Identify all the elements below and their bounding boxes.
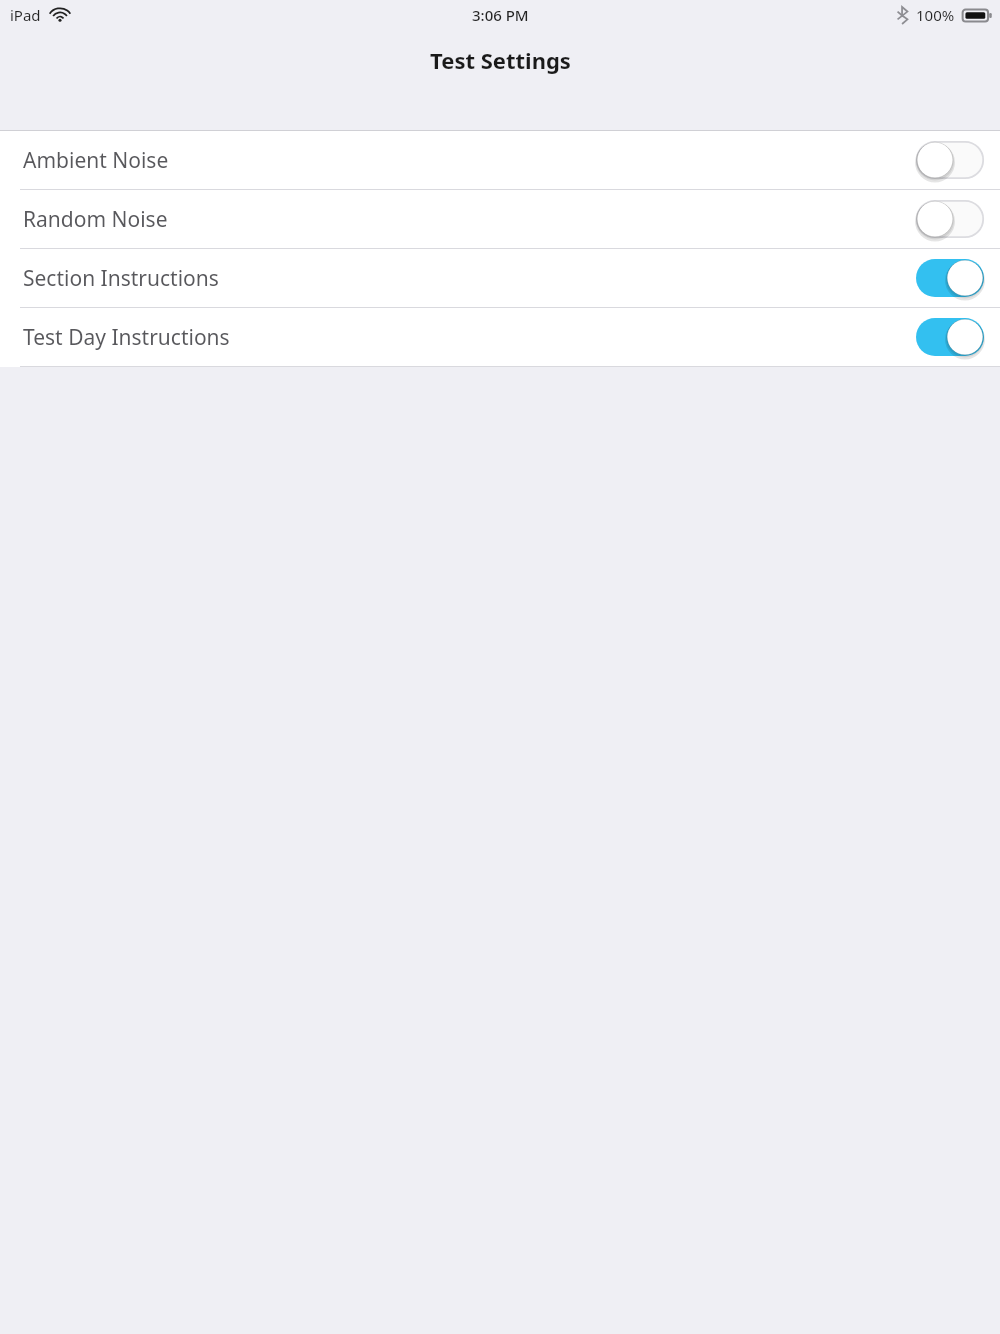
staticText: Random Noise <box>23 205 168 234</box>
staticText: Section Instructions <box>23 264 219 293</box>
button[interactable]: Ambient Noise <box>0 131 1000 189</box>
button[interactable]: Test Day Instructions <box>0 308 1000 366</box>
button[interactable]: Toggle Random Noise <box>916 199 984 239</box>
staticText: Test Day Instructions <box>23 323 230 352</box>
staticText: 3:06 PM <box>472 5 529 25</box>
staticText: 100% <box>916 5 955 25</box>
staticText: iPad <box>10 5 41 25</box>
button[interactable]: Toggle Ambient Noise <box>916 140 984 180</box>
staticText: Ambient Noise <box>23 146 169 175</box>
button[interactable]: Section Instructions <box>0 249 1000 307</box>
button[interactable]: Random Noise <box>0 190 1000 248</box>
button[interactable]: Toggle Section Instructions <box>916 258 984 298</box>
staticText: Test Settings <box>430 45 571 75</box>
button[interactable]: Toggle Test Day Instructions <box>916 317 984 357</box>
